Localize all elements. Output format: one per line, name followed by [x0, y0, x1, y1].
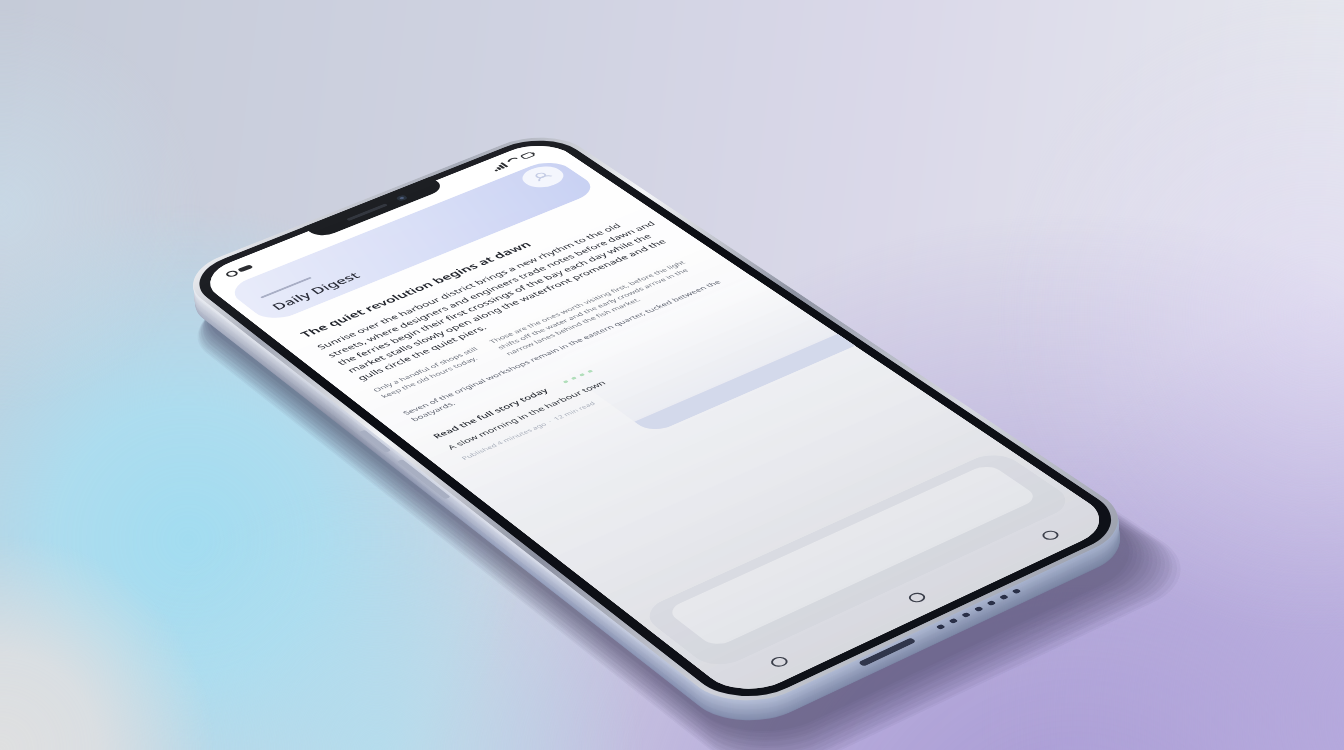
button[interactable]: Profile: [224, 157, 601, 324]
staticText: Sunrise over the harbour district brings…: [314, 211, 692, 382]
button[interactable]: Profile: [515, 162, 571, 191]
staticText: Daily Digest: [268, 269, 364, 313]
staticText: Read the full story today: [430, 386, 551, 441]
staticText: Published 4 minutes ago · 12 min read: [459, 400, 598, 461]
button[interactable]: [637, 449, 1078, 672]
button[interactable]: [551, 276, 855, 434]
button[interactable]: Home: [891, 583, 942, 612]
staticText: The quiet revolution begins at dawn: [297, 239, 535, 340]
staticText: A slow morning in the harbour town: [444, 379, 608, 451]
staticText: Those are the ones worth visiting first,…: [487, 251, 723, 356]
button[interactable]: Recents: [1024, 521, 1075, 549]
staticText: Only a handful of shops still keep the o…: [371, 343, 493, 399]
button[interactable]: Back: [753, 647, 804, 677]
staticText: Seven of the original workshops remain i…: [400, 272, 747, 423]
